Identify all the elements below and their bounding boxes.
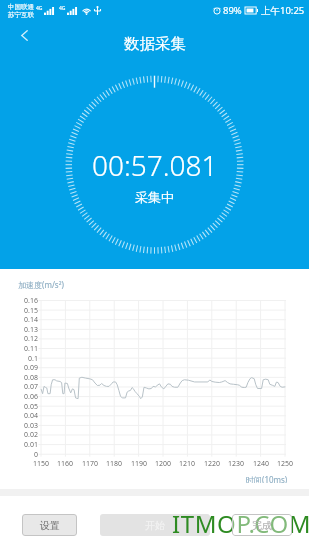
button[interactable]: 设置 <box>22 514 77 536</box>
staticText: 0.1 <box>14 354 38 364</box>
staticText: 0.11 <box>14 344 38 354</box>
button[interactable]: 返回 <box>6 17 42 53</box>
staticText: 0.14 <box>14 315 38 325</box>
staticText: 0.09 <box>14 363 38 373</box>
staticText: 0.08 <box>14 373 38 383</box>
staticText: 0.07 <box>14 382 38 392</box>
staticText: 0.13 <box>14 325 38 335</box>
staticText: 0 <box>14 450 38 460</box>
staticText: 1220 <box>199 459 225 469</box>
staticText: 1250 <box>272 459 298 469</box>
staticText: 00:57.081 <box>92 146 218 184</box>
staticText: 0.15 <box>14 306 38 316</box>
staticText: 0.02 <box>14 430 38 440</box>
staticText: 1160 <box>52 459 78 469</box>
staticText: 加速度(m/s²) <box>18 279 64 290</box>
staticText: 0.12 <box>14 334 38 344</box>
button[interactable]: 完成 <box>232 514 292 536</box>
staticText: 4G <box>59 5 66 12</box>
staticText: 上午10:25 <box>261 4 305 17</box>
staticText: 苏宁互联 <box>8 11 34 19</box>
staticText: 数据采集 <box>124 34 186 54</box>
staticText: 1210 <box>174 459 200 469</box>
staticText: 0.01 <box>14 440 38 450</box>
staticText: 采集中 <box>135 189 174 205</box>
staticText: 0.06 <box>14 392 38 402</box>
staticText: 1180 <box>101 459 127 469</box>
staticText: ITMOP.COM <box>172 507 309 540</box>
staticText: 1150 <box>28 459 54 469</box>
staticText: 4G <box>36 5 43 12</box>
staticText: 1200 <box>150 459 176 469</box>
staticText: 1230 <box>223 459 249 469</box>
staticText: 89% <box>223 4 242 17</box>
staticText: 设置 <box>40 519 60 532</box>
staticText: 1240 <box>248 459 274 469</box>
staticText: 时间(10ms) <box>246 474 288 485</box>
staticText: 中国联通 <box>8 3 34 11</box>
staticText: 开始 <box>145 519 165 532</box>
staticText: 0.16 <box>14 296 38 306</box>
staticText: 0.05 <box>14 402 38 412</box>
staticText: 0.04 <box>14 411 38 421</box>
staticText: 0.03 <box>14 421 38 431</box>
staticText: 1190 <box>126 459 152 469</box>
staticText: 完成 <box>252 519 272 532</box>
button[interactable]: 开始 <box>100 514 210 536</box>
staticText: 1170 <box>77 459 103 469</box>
